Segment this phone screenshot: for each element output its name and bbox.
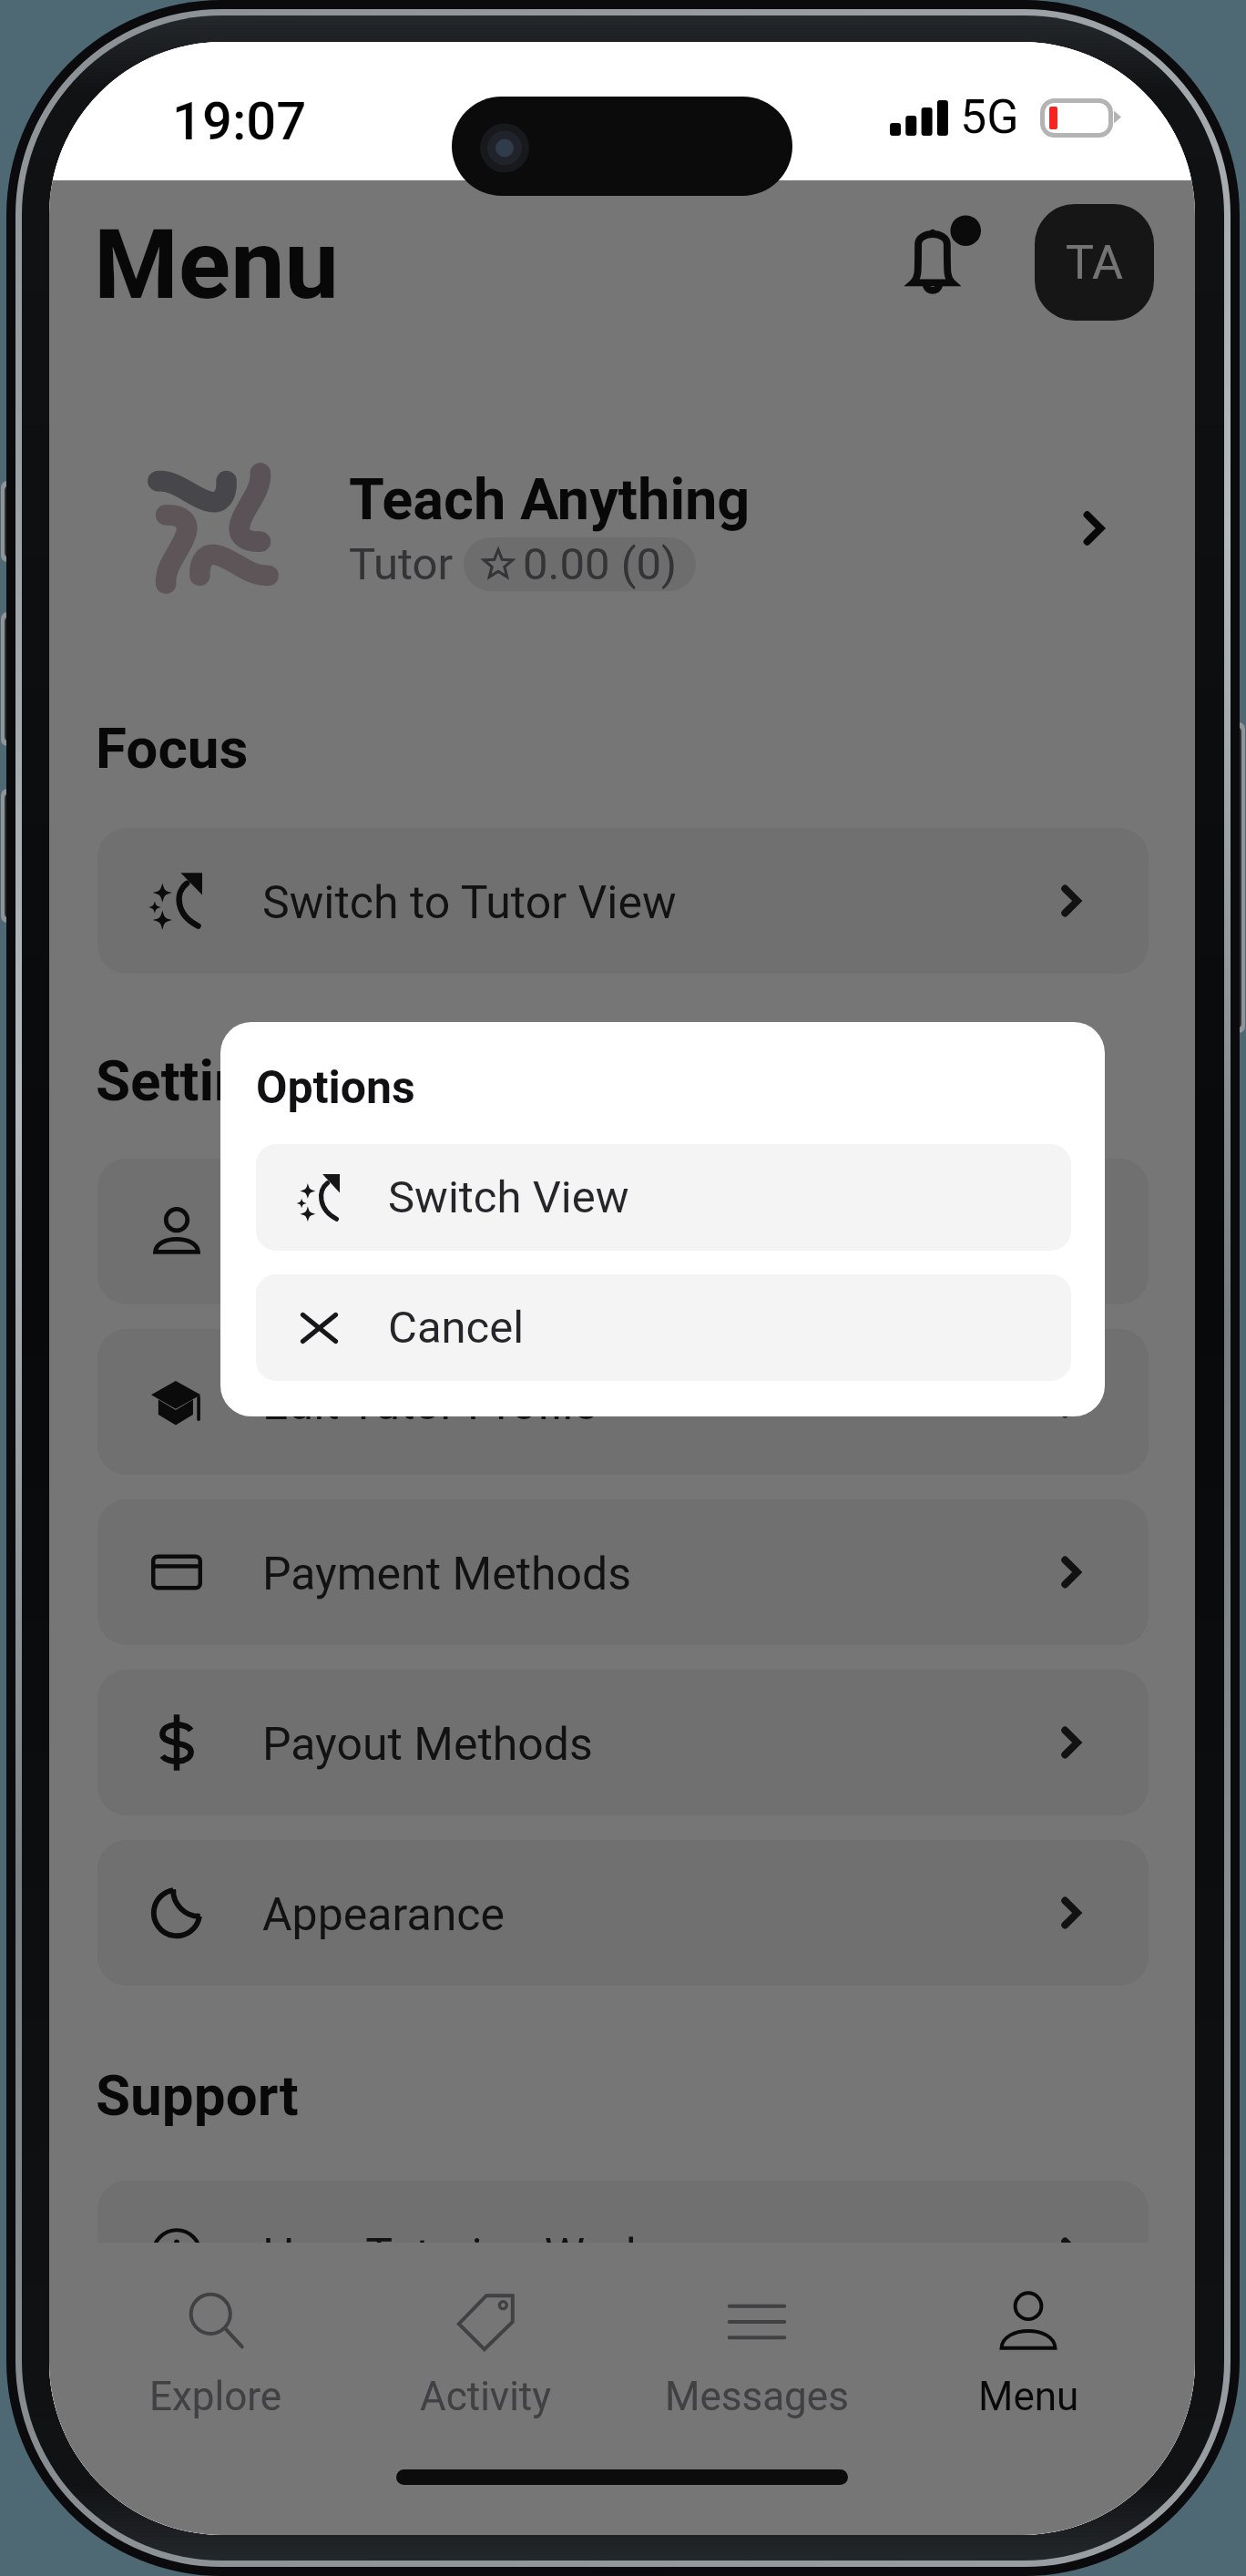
button[interactable]: Cancel xyxy=(256,1274,1071,1381)
staticText: Explore xyxy=(149,2373,282,2420)
button[interactable]: Notifications xyxy=(895,217,985,308)
staticText: Payment Methods xyxy=(262,1548,632,1601)
staticText: Teach Anything xyxy=(349,466,751,534)
staticText: Cancel xyxy=(388,1302,525,1354)
staticText: Edit Profile xyxy=(262,1207,481,1261)
button[interactable]: Switch View xyxy=(256,1144,1071,1251)
staticText: TA xyxy=(1066,235,1123,291)
button[interactable]: Menu xyxy=(893,2289,1164,2448)
staticText: Payout Methods xyxy=(262,1718,593,1772)
staticText: Appearance xyxy=(262,1888,505,1942)
staticText: Edit Tutor Profile xyxy=(262,1377,597,1431)
button[interactable]: Help Center xyxy=(97,2351,1149,2497)
staticText: Support xyxy=(96,2062,299,2129)
staticText: Switch View xyxy=(388,1171,629,1223)
staticText: Menu xyxy=(978,2373,1079,2420)
staticText: Menu xyxy=(94,209,339,322)
staticText: 5G xyxy=(960,89,1019,145)
staticText: Settings xyxy=(96,1048,308,1114)
button[interactable]: Appearance xyxy=(97,1840,1149,1986)
button[interactable]: Messages xyxy=(621,2289,893,2448)
button[interactable]: How Tutoring Works xyxy=(97,2181,1149,2326)
staticText: Options xyxy=(256,1061,415,1115)
button[interactable]: Explore xyxy=(80,2289,351,2448)
staticText: How Tutoring Works xyxy=(262,2229,673,2283)
button[interactable]: Edit Tutor Profile xyxy=(97,1329,1149,1475)
button[interactable]: Edit Profile xyxy=(97,1159,1149,1304)
button[interactable]: Activity xyxy=(351,2289,621,2448)
button[interactable]: Payout Methods xyxy=(97,1670,1149,1815)
staticText: Messages xyxy=(665,2373,849,2420)
staticText: Help Center xyxy=(262,2399,501,2453)
staticText: Switch to Tutor View xyxy=(262,876,677,930)
staticText: Activity xyxy=(420,2373,552,2420)
staticText: Tutor xyxy=(349,538,454,590)
button[interactable]: Teach Anything xyxy=(49,424,1195,632)
button[interactable]: Switch to Tutor View xyxy=(97,828,1149,974)
staticText: Focus xyxy=(96,715,249,782)
button[interactable]: Payment Methods xyxy=(97,1499,1149,1645)
staticText: 19:07 xyxy=(172,90,307,152)
staticText: 0.00 (0) xyxy=(523,538,678,590)
button[interactable]: TA xyxy=(1035,204,1154,321)
